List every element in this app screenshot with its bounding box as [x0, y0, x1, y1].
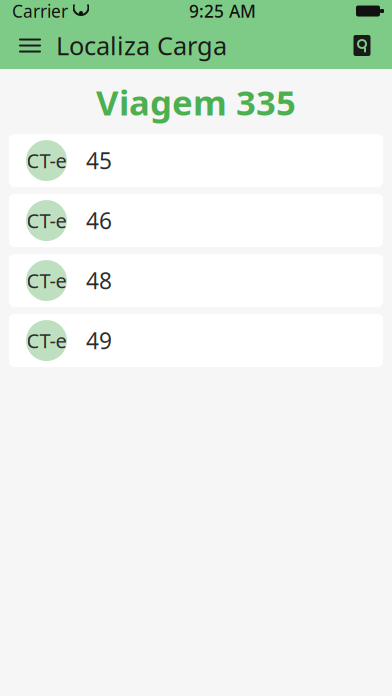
button[interactable]: CT-e — [9, 134, 383, 187]
button[interactable]: CT-e — [9, 194, 383, 247]
staticText: 46 — [86, 205, 112, 236]
staticText: Carrier — [12, 0, 68, 22]
staticText: CT-e — [26, 207, 66, 234]
button[interactable]: CT-e — [9, 314, 383, 367]
staticText: 48 — [86, 265, 112, 296]
staticText: Viagem 335 — [96, 79, 296, 125]
staticText: CT-e — [26, 267, 66, 294]
staticText: 9:25 AM — [189, 0, 256, 22]
staticText: Localiza Carga — [56, 29, 227, 62]
button[interactable]: Search — [340, 23, 384, 67]
staticText: 45 — [86, 145, 112, 176]
staticText: CT-e — [26, 147, 66, 174]
button[interactable]: CT-e — [9, 254, 383, 307]
staticText: 49 — [86, 325, 112, 356]
staticText: CT-e — [26, 327, 66, 354]
button[interactable]: Menu — [8, 23, 52, 67]
